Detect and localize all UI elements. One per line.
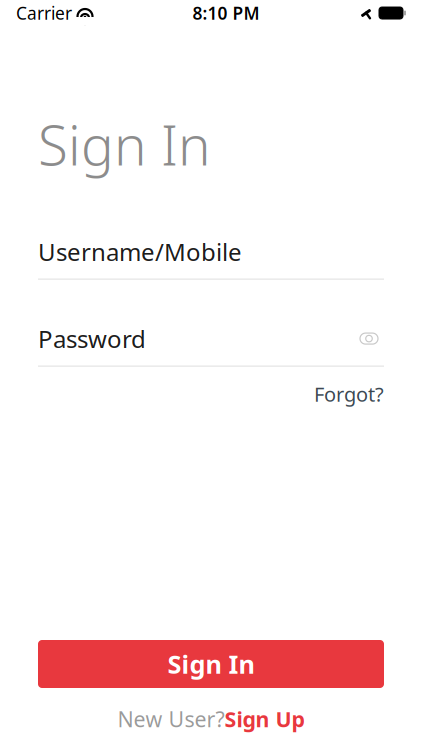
staticText: Sign In [167,647,254,681]
staticText: Username/Mobile [38,236,242,268]
button[interactable]: Sign In [38,640,384,688]
button[interactable]: Show password [354,326,384,352]
staticText: Sign In [38,108,211,181]
button[interactable]: Forgot? [314,381,384,407]
staticText: Carrier [16,1,72,24]
staticText: Forgot? [314,381,384,407]
staticText: Password [38,323,146,355]
button[interactable]: New User? [117,704,304,734]
staticText: 8:10 PM [192,1,259,24]
staticText: Sign Up [224,705,304,733]
staticText: New User? [117,705,224,733]
